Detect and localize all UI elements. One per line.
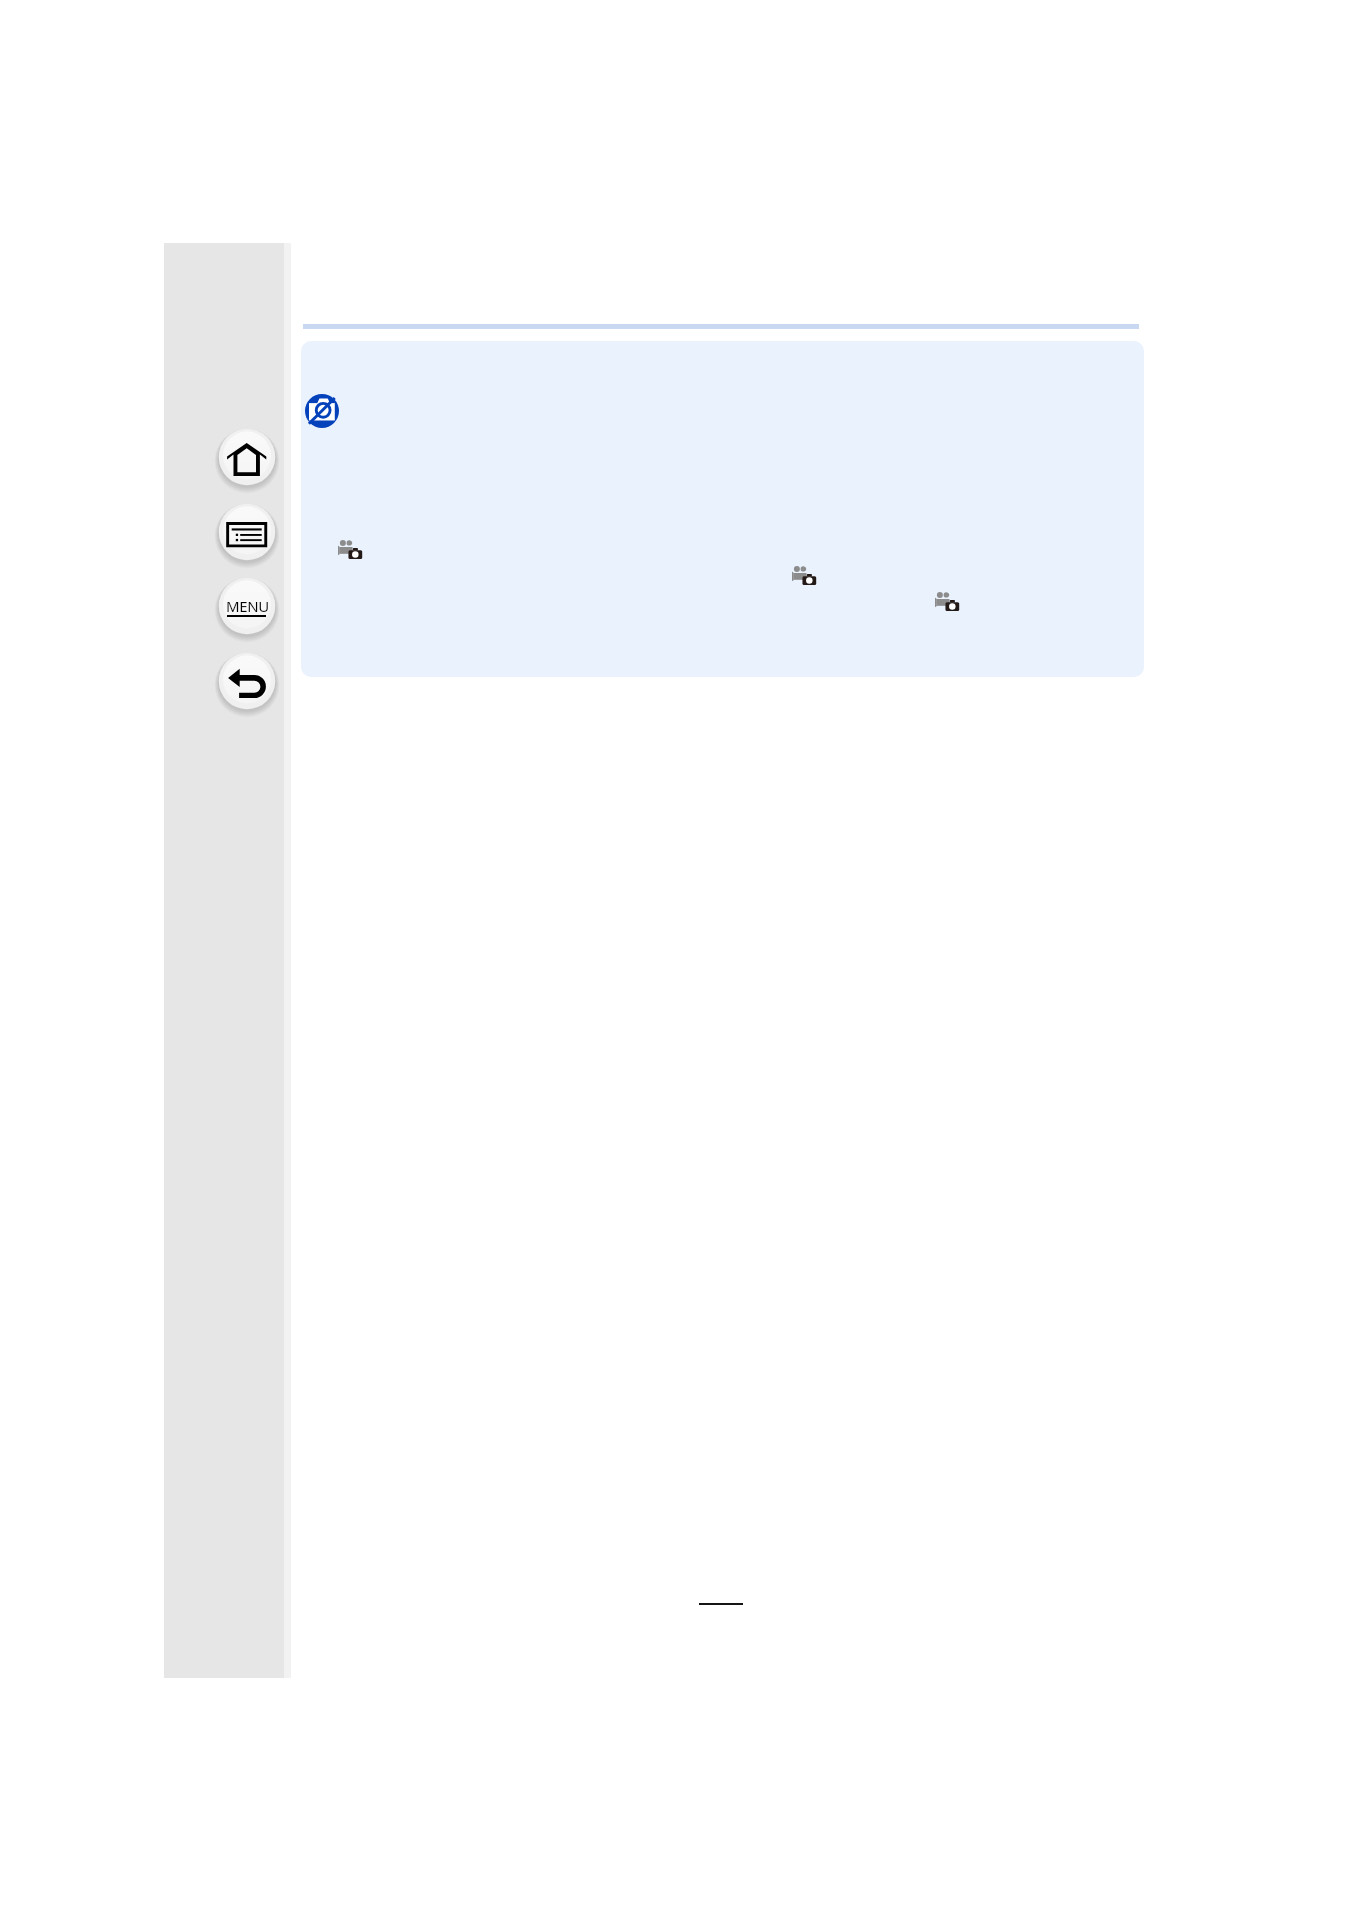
button[interactable]: Not available <box>305 394 339 428</box>
button[interactable]: MENU <box>225 595 269 617</box>
button[interactable]: Home <box>212 422 282 492</box>
button[interactable]: Back <box>212 646 282 716</box>
button[interactable]: Menu <box>212 571 282 641</box>
staticText: MENU <box>226 596 269 616</box>
button[interactable]: Contents <box>212 497 282 567</box>
